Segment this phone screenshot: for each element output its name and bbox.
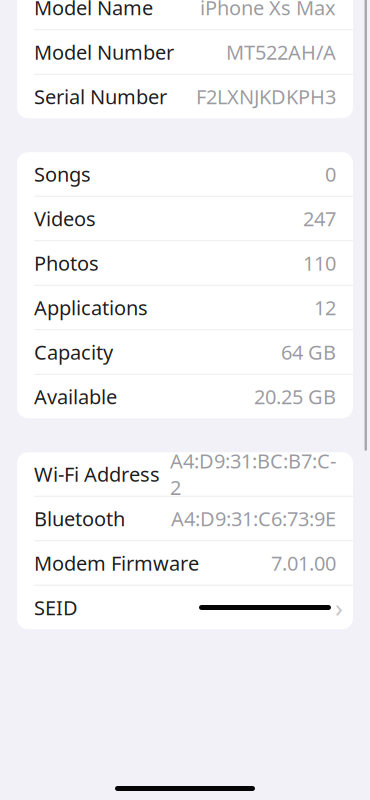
staticText: 110 <box>303 250 336 276</box>
button[interactable]: Wi-Fi Address <box>17 452 353 496</box>
staticText: Capacity <box>34 339 113 365</box>
staticText: A4:D9:31:C6:73:9E <box>171 505 336 532</box>
staticText: Photos <box>34 250 99 276</box>
button[interactable]: SEID <box>17 586 353 629</box>
button[interactable]: Modem Firmware <box>17 541 353 585</box>
staticText: 247 <box>303 205 336 232</box>
staticText: Serial Number <box>34 83 167 110</box>
staticText: Modem Firmware <box>34 550 199 576</box>
staticText: › <box>335 591 343 624</box>
staticText: Model Number <box>34 39 174 65</box>
staticText: Songs <box>34 161 91 187</box>
staticText: 64 GB <box>281 339 336 365</box>
button[interactable]: Bluetooth <box>17 497 353 540</box>
staticText: Wi-Fi Address <box>34 461 160 487</box>
staticText: 7.01.00 <box>271 550 336 576</box>
button[interactable]: Videos <box>17 197 353 240</box>
staticText: F2LXNJKDKPH3 <box>196 83 336 110</box>
button[interactable]: Applications <box>17 286 353 329</box>
button[interactable]: Capacity <box>17 330 353 374</box>
staticText: A4:D9:31:BC:B7:C2 <box>170 447 336 500</box>
button[interactable]: Serial Number <box>17 75 353 118</box>
staticText: 20.25 GB <box>254 383 336 410</box>
staticText: SEID <box>34 594 78 621</box>
staticText: MT522AH/A <box>226 39 336 65</box>
staticText: 12 <box>314 294 336 321</box>
button[interactable]: Model Number <box>17 30 353 74</box>
staticText: iPhone Xs Max <box>200 0 336 21</box>
staticText: Available <box>34 383 117 410</box>
staticText: 0 <box>325 161 336 187</box>
staticText: Videos <box>34 205 96 232</box>
staticText: Applications <box>34 294 148 321</box>
staticText: Bluetooth <box>34 505 125 532</box>
button[interactable]: Model Name <box>17 0 353 29</box>
button[interactable]: Songs <box>17 152 353 196</box>
button[interactable]: Available <box>17 375 353 418</box>
button[interactable]: Photos <box>17 241 353 285</box>
staticText: Model Name <box>34 0 153 21</box>
